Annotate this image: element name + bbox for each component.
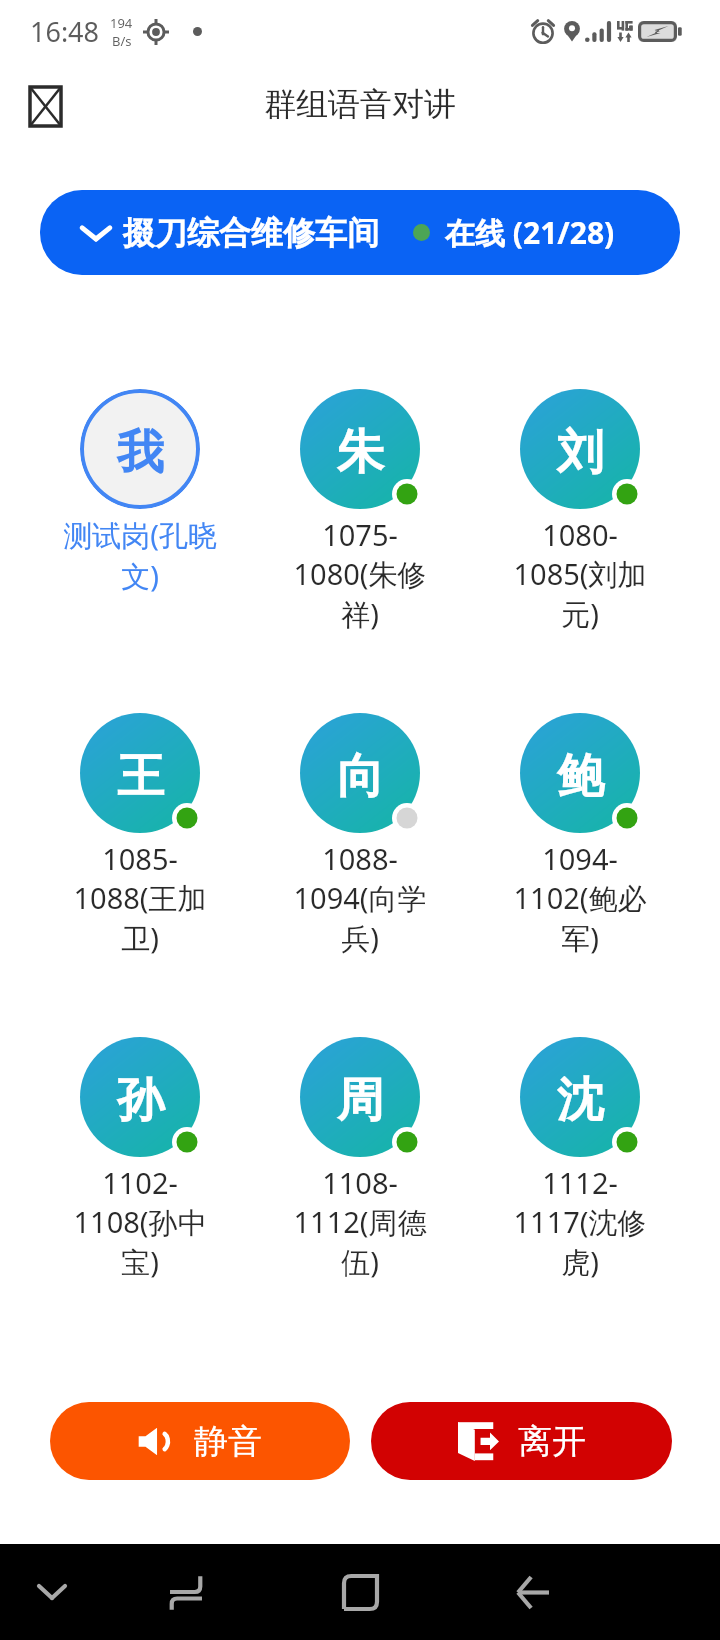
button[interactable]: 掇刀综合维修车间 [40,190,680,275]
staticText: 194 [110,14,133,32]
staticText: 向 [337,747,384,806]
button[interactable]: Switch apps [131,1544,241,1640]
staticText: B/s [112,32,132,50]
staticText: 沈 [557,1071,604,1130]
button[interactable]: Back [478,1544,588,1640]
button[interactable]: 鲍 [480,713,680,957]
staticText: 我 [117,423,164,482]
button[interactable]: Hide keyboard [7,1544,97,1640]
staticText: 1102- 1108(孙中 宝) [71,1163,209,1281]
staticText: 1088- 1094(向学 兵) [291,839,429,957]
button[interactable]: 向 [260,713,460,957]
button[interactable]: 刘 [480,389,680,633]
button[interactable]: 周 [260,1037,460,1281]
staticText: 静音 [194,1420,262,1463]
button[interactable]: Home [305,1544,415,1640]
staticText: 朱 [337,423,384,482]
staticText: 16:48 [30,13,100,50]
button[interactable]: 王 [40,713,240,957]
staticText: 群组语音对讲 [264,84,456,124]
button[interactable]: 孙 [40,1037,240,1281]
staticText: 1085- 1088(王加 卫) [71,839,209,957]
staticText: 孙 [117,1071,164,1130]
staticText: 1108- 1112(周德 伍) [291,1163,429,1281]
staticText: 1112- 1117(沈修 虎) [511,1163,649,1281]
staticText: 测试岗(孔晓 文) [52,515,228,595]
staticText: 王 [117,747,164,806]
button[interactable]: 静音 [50,1402,350,1480]
staticText: 在线 (21/28) [445,212,615,253]
staticText: 1094- 1102(鲍必 军) [511,839,649,957]
button[interactable]: 沈 [480,1037,680,1281]
button[interactable]: 朱 [260,389,460,633]
staticText: 掇刀综合维修车间 [123,213,379,253]
button[interactable]: Back [30,87,61,126]
staticText: 1080- 1085(刘加 元) [511,515,649,633]
staticText: 鲍 [557,747,604,806]
staticText: 刘 [557,423,604,482]
button[interactable]: 我 [40,389,240,595]
staticText: 周 [337,1071,384,1130]
staticText: 离开 [518,1420,586,1463]
staticText: 1075- 1080(朱修 祥) [291,515,429,633]
button[interactable]: 离开 [371,1402,672,1480]
